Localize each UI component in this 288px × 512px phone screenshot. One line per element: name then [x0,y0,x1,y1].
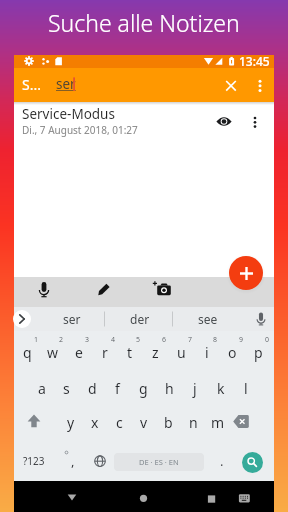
staticText: y [67,413,75,432]
button[interactable] [242,452,263,473]
staticText: 7 [188,335,193,345]
button[interactable]: m [205,405,230,439]
button[interactable] [14,103,274,143]
button[interactable]: see [178,304,238,334]
staticText: der [130,311,150,327]
button[interactable] [246,112,265,131]
button[interactable] [56,487,88,509]
staticText: u [177,343,186,362]
button[interactable]: ?123 [14,446,54,476]
staticText: 13:45 [239,53,270,69]
staticText: f [115,379,120,398]
staticText: Di., 7 August 2018, 01:27 [22,123,138,137]
staticText: , [71,452,75,470]
staticText: j [193,379,197,398]
staticText: i [205,343,209,362]
staticText: S... [22,75,41,94]
button[interactable]: n [181,405,206,439]
staticText: d [88,379,97,398]
staticText: Suche alle Notizen [48,7,240,37]
staticText: s [63,379,70,398]
staticText: b [164,413,173,432]
button[interactable]: h [157,371,182,405]
button[interactable]: y [58,405,83,439]
button[interactable] [90,451,110,471]
button[interactable]: k [208,371,233,405]
staticText: z [152,343,159,362]
staticText: 4 [111,335,116,345]
staticText: DE · ES · EN [139,457,179,467]
button[interactable]: v [131,405,156,439]
button[interactable] [13,310,31,328]
staticText: c [116,413,123,432]
button[interactable] [222,77,240,95]
button[interactable]: w [40,335,65,369]
button[interactable] [252,310,270,328]
button[interactable] [231,410,252,431]
staticText: see [198,311,218,327]
button[interactable]: d [80,371,105,405]
staticText: g [139,379,148,398]
staticText: e [75,343,83,362]
staticText: 5 [136,335,141,345]
staticText: x [91,413,99,432]
button[interactable]: ser [42,304,102,334]
button[interactable] [128,487,160,509]
button[interactable]: c [107,405,132,439]
staticText: m [211,413,225,432]
button[interactable] [24,410,45,431]
button[interactable]: i [194,335,219,369]
button[interactable]: l [233,371,258,405]
staticText: a [38,379,46,398]
button[interactable]: x [82,405,107,439]
button[interactable] [93,279,115,301]
staticText: t [127,343,133,362]
staticText: 2 [59,335,64,345]
staticText: n [189,413,198,432]
button[interactable]: , [63,446,83,476]
button[interactable]: s [54,371,79,405]
staticText: . [220,452,224,470]
staticText: ser [56,75,76,93]
button[interactable]: p [246,335,271,369]
staticText: Service-Modus [22,105,115,123]
staticText: l [244,379,248,398]
button[interactable]: q [15,335,40,369]
staticText: w [47,343,59,362]
staticText: q [23,343,32,362]
staticText: k [217,379,225,398]
staticText: ?123 [23,454,45,468]
button[interactable] [215,112,234,131]
staticText: v [140,413,148,432]
button[interactable] [229,256,263,290]
staticText: o [228,343,237,362]
button[interactable]: t [117,335,142,369]
button[interactable] [152,279,174,301]
button[interactable]: DE · ES · EN [114,453,204,471]
staticText: p [254,343,263,362]
staticText: 6 [162,335,167,345]
staticText: 1 [34,335,39,345]
button[interactable]: a [29,371,54,405]
button[interactable]: der [110,304,170,334]
button[interactable]: o [220,335,245,369]
staticText: 3 [85,335,90,345]
button[interactable] [196,487,228,509]
button[interactable]: z [143,335,168,369]
button[interactable]: b [156,405,181,439]
staticText: r [102,343,108,362]
button[interactable] [33,279,55,301]
button[interactable] [251,77,269,95]
staticText: ser [63,311,81,327]
button[interactable]: j [182,371,207,405]
staticText: h [165,379,174,398]
staticText: 8 [213,335,218,345]
button[interactable]: r [92,335,117,369]
button[interactable]: . [212,446,232,476]
button[interactable]: f [105,371,130,405]
button[interactable] [234,488,255,509]
button[interactable]: u [169,335,194,369]
button[interactable]: e [66,335,91,369]
button[interactable]: g [131,371,156,405]
staticText: 0 [265,335,270,345]
